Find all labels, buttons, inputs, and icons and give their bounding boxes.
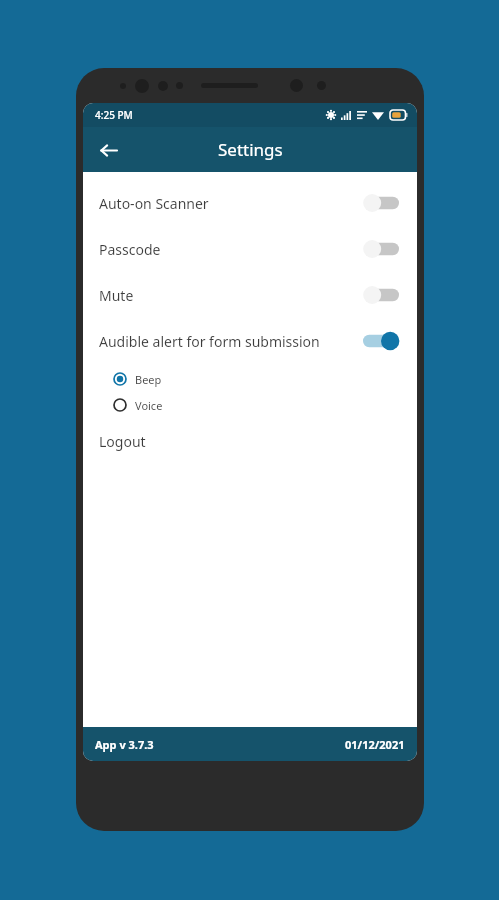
staticText: Auto-on Scanner [99, 194, 363, 213]
staticText: Audible alert for form submission [99, 332, 363, 351]
staticText: Mute [99, 286, 363, 305]
staticText: App v 3.7.3 [95, 737, 154, 752]
staticText: 01/12/2021 [345, 737, 405, 752]
button[interactable]: Passcode [83, 226, 417, 272]
button[interactable]: Mute [83, 272, 417, 318]
staticText: Beep [135, 372, 162, 387]
staticText: Passcode [99, 240, 363, 259]
staticText: Logout [99, 432, 146, 451]
staticText: Voice [135, 398, 163, 413]
button[interactable]: Auto-on Scanner [83, 180, 417, 226]
button[interactable]: Back [89, 131, 127, 169]
button[interactable]: Logout [83, 426, 417, 456]
button[interactable]: Voice [83, 392, 417, 418]
button[interactable]: Audible alert for form submission [83, 318, 417, 364]
staticText: 4:25 PM [95, 108, 133, 122]
staticText: Settings [218, 138, 283, 161]
button[interactable]: Beep [83, 366, 417, 392]
